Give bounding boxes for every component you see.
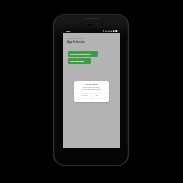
button[interactable]: YES bbox=[90, 91, 104, 99]
button[interactable]: RUN INSTALLER bbox=[68, 58, 91, 64]
staticText: RUN INSTALLER bbox=[70, 60, 84, 63]
staticText: App Selection bbox=[67, 40, 85, 44]
staticText: This cannot be undone. The app will be u… bbox=[74, 86, 109, 90]
staticText: UNINSTALL PACKAGE A bbox=[70, 53, 91, 56]
staticText: Select the app to uninstall bbox=[67, 38, 84, 40]
button[interactable]: CANCEL bbox=[77, 91, 91, 99]
staticText: YES bbox=[95, 94, 99, 96]
staticText: Are you sure? bbox=[74, 83, 109, 86]
staticText: 10:30 bbox=[66, 30, 71, 32]
button[interactable]: UNINSTALL PACKAGE A bbox=[68, 51, 98, 57]
staticText: CANCEL bbox=[81, 94, 88, 96]
